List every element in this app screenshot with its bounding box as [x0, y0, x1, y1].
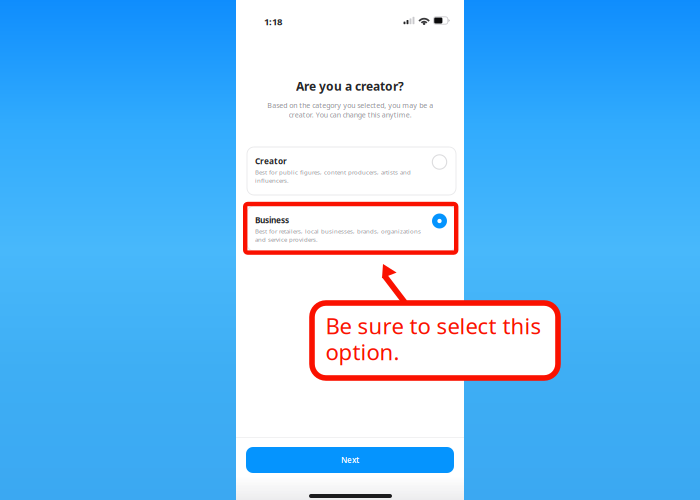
button[interactable]: Next [246, 447, 454, 473]
staticText: Be sure to select this [325, 310, 541, 341]
staticText: option. [325, 336, 399, 367]
button[interactable]: Business [247, 206, 456, 251]
staticText: Best for public figures, content produce… [255, 168, 411, 184]
staticText: Next [341, 455, 359, 465]
button[interactable]: Creator [247, 147, 456, 195]
staticText: 1:18 [264, 15, 282, 28]
staticText: Creator [255, 155, 287, 167]
staticText: Based on the category you selected, you … [267, 100, 433, 120]
staticText: Best for retailers, local businesses, br… [255, 227, 421, 243]
staticText: Are you a creator? [296, 78, 404, 94]
staticText: Business [255, 214, 289, 226]
